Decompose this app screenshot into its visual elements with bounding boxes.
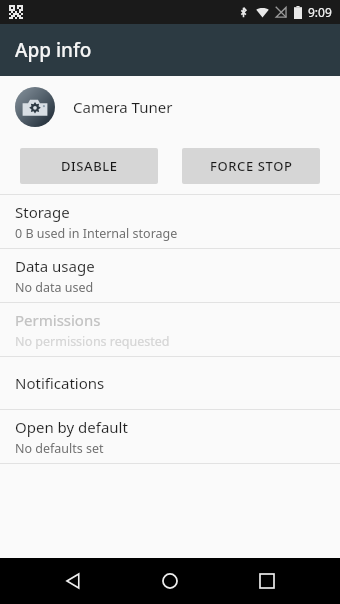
- button[interactable]: FORCE STOP: [182, 148, 320, 184]
- staticText: 0 B used in Internal storage: [15, 225, 178, 242]
- staticText: App info: [15, 37, 92, 63]
- staticText: Camera Tuner: [73, 97, 173, 117]
- staticText: Storage: [15, 202, 70, 222]
- button[interactable]: DISABLE: [20, 148, 158, 184]
- button: Permissions: [0, 303, 340, 356]
- staticText: 9:09: [308, 4, 332, 20]
- staticText: No data used: [15, 279, 94, 296]
- staticText: DISABLE: [61, 157, 118, 175]
- button[interactable]: Back: [49, 558, 97, 604]
- staticText: Notifications: [15, 373, 105, 393]
- staticText: Data usage: [15, 256, 95, 276]
- button[interactable]: Storage: [0, 195, 340, 248]
- button[interactable]: Recents: [243, 558, 291, 604]
- staticText: Permissions: [15, 310, 101, 330]
- staticText: FORCE STOP: [210, 157, 293, 175]
- staticText: No defaults set: [15, 440, 104, 457]
- staticText: Open by default: [15, 417, 128, 437]
- button[interactable]: Open by default: [0, 410, 340, 463]
- button[interactable]: Data usage: [0, 249, 340, 302]
- button[interactable]: Notifications: [0, 357, 340, 409]
- staticText: No permissions requested: [15, 333, 170, 350]
- button[interactable]: Home: [146, 558, 194, 604]
